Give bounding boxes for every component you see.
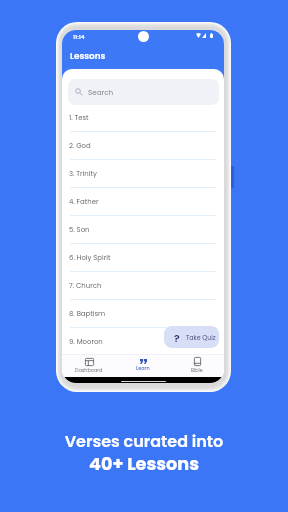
button[interactable]: 3. Trinity	[62, 160, 224, 188]
button[interactable]: 9. Mooron	[62, 328, 224, 356]
staticText: Lessons	[70, 50, 106, 62]
button[interactable]: Dashboard	[62, 358, 116, 374]
button[interactable]: ?	[164, 326, 219, 348]
staticText: ?	[174, 331, 180, 346]
staticText: Take Quiz	[186, 333, 216, 342]
staticText: 6. Holy Spirit	[69, 253, 111, 263]
staticText: 4. Father	[69, 197, 99, 207]
button[interactable]: 5. Son	[62, 216, 224, 244]
staticText: 8. Baptism	[69, 309, 106, 319]
staticText: Verses curated into	[0, 430, 288, 452]
staticText: 9. Mooron	[69, 337, 103, 347]
staticText: 40+ Lessons	[0, 452, 288, 477]
staticText: 5. Son	[69, 225, 90, 235]
staticText: 3. Trinity	[69, 169, 97, 179]
button[interactable]: 1. Test	[62, 104, 224, 132]
staticText: 2. God	[69, 141, 91, 151]
button[interactable]: 7. Church	[62, 272, 224, 300]
staticText: Search	[88, 87, 114, 97]
staticText: Learn	[136, 365, 150, 372]
staticText: 11:14	[73, 33, 85, 41]
button[interactable]: 4. Father	[62, 188, 224, 216]
staticText: 1. Test	[69, 113, 89, 123]
button[interactable]: 8. Baptism	[62, 300, 224, 328]
staticText: Dashboard	[75, 367, 103, 374]
button[interactable]: 6. Holy Spirit	[62, 244, 224, 272]
button[interactable]: Bible	[170, 357, 224, 374]
staticText: Bible	[191, 367, 203, 374]
button[interactable]: Learn	[116, 359, 170, 372]
staticText: 7. Church	[69, 281, 102, 291]
button[interactable]: Search	[68, 79, 219, 105]
button[interactable]: 2. God	[62, 132, 224, 160]
